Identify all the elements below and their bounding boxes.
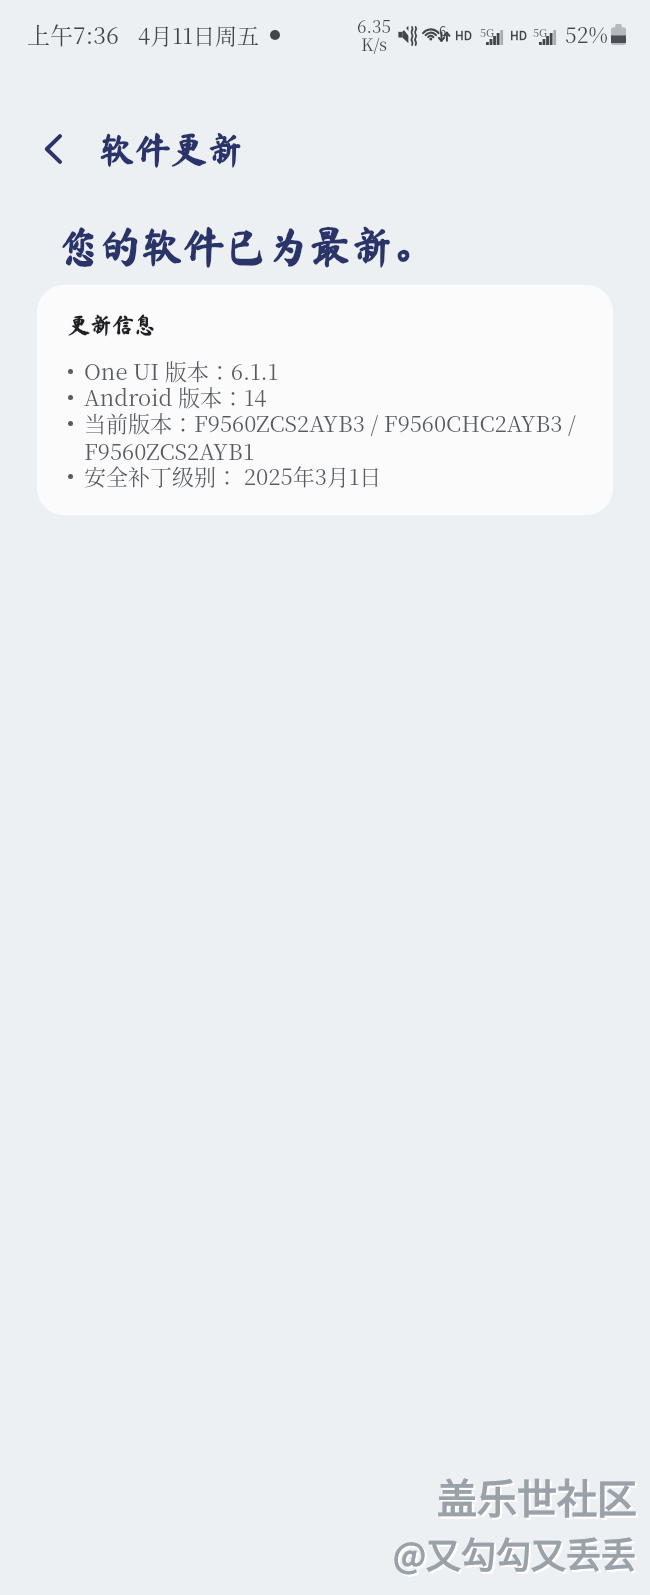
staticText: 5G: [480, 24, 495, 40]
staticText: 52%: [565, 19, 608, 49]
staticText: 软件更新: [99, 131, 244, 167]
button[interactable]: 更新信息: [37, 285, 613, 515]
staticText: Android 版本：14: [84, 381, 267, 413]
staticText: 4月11日周五: [138, 19, 259, 51]
staticText: 盖乐世社区: [437, 1467, 637, 1525]
staticText: 当前版本：F9560ZCS2AYB3 / F9560CHC2AYB3 / F95…: [84, 407, 609, 467]
staticText: HD: [455, 26, 472, 43]
staticText: 上午7:36: [27, 18, 119, 51]
staticText: K/s: [361, 31, 388, 55]
staticText: HD: [510, 26, 527, 43]
staticText: 更新信息: [68, 314, 157, 336]
staticText: One UI 版本：6.1.1: [84, 355, 279, 387]
button[interactable]: 返回: [31, 126, 77, 172]
staticText: 安全补丁级别： 2025年3月1日: [84, 460, 382, 492]
staticText: @又勾勾又丢丢: [393, 1527, 637, 1578]
staticText: 6.35: [357, 13, 391, 37]
staticText: 盖乐世社区: [439, 1469, 639, 1527]
staticText: 5G: [533, 24, 548, 40]
staticText: 6: [439, 21, 447, 40]
staticText: 您的软件已为最新。: [57, 225, 436, 267]
staticText: @又勾勾又丢丢: [395, 1529, 639, 1580]
